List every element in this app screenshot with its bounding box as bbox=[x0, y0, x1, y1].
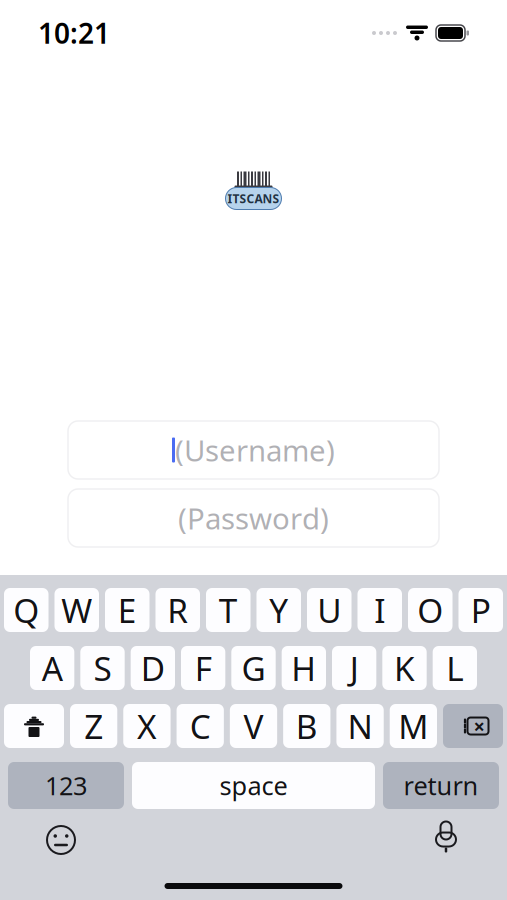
staticText: L bbox=[446, 646, 463, 690]
button[interactable]: R bbox=[155, 588, 200, 632]
button[interactable]: V bbox=[230, 704, 277, 748]
button[interactable]: L bbox=[433, 646, 477, 690]
staticText: 10:21 bbox=[38, 14, 110, 52]
button[interactable]: X bbox=[123, 704, 171, 748]
button[interactable]: M bbox=[390, 704, 437, 748]
button[interactable]: I bbox=[357, 588, 402, 632]
staticText: U bbox=[317, 588, 341, 632]
staticText: G bbox=[241, 646, 265, 690]
button[interactable]: (Username) bbox=[68, 421, 439, 479]
button[interactable]: P bbox=[458, 588, 503, 632]
staticText: (Username) bbox=[175, 430, 335, 469]
staticText: return bbox=[403, 769, 478, 802]
staticText: × bbox=[473, 713, 484, 739]
staticText: W bbox=[61, 588, 92, 632]
button[interactable]: 123 bbox=[8, 762, 124, 809]
button[interactable]: Emoji keyboard bbox=[38, 817, 84, 863]
button[interactable]: Delete bbox=[443, 704, 503, 748]
staticText: P bbox=[471, 588, 491, 632]
staticText: ITSCANS bbox=[227, 190, 279, 206]
staticText: N bbox=[348, 704, 373, 748]
button[interactable]: A bbox=[30, 646, 74, 690]
button[interactable]: space bbox=[132, 762, 375, 809]
staticText: K bbox=[394, 646, 415, 690]
button[interactable]: D bbox=[131, 646, 175, 690]
staticText: H bbox=[291, 646, 316, 690]
button[interactable]: H bbox=[282, 646, 326, 690]
button[interactable]: J bbox=[332, 646, 376, 690]
button[interactable]: Shift bbox=[4, 704, 64, 748]
button[interactable]: (Password) bbox=[68, 489, 439, 547]
staticText: Z bbox=[84, 704, 103, 748]
button[interactable]: U bbox=[307, 588, 351, 632]
staticText: Y bbox=[269, 588, 288, 632]
staticText: S bbox=[93, 646, 111, 690]
staticText: J bbox=[350, 646, 359, 690]
staticText: B bbox=[296, 704, 318, 748]
button[interactable]: K bbox=[382, 646, 427, 690]
button[interactable]: Dictation bbox=[423, 817, 469, 863]
button[interactable]: W bbox=[54, 588, 99, 632]
staticText: V bbox=[243, 704, 263, 748]
button[interactable]: N bbox=[336, 704, 384, 748]
button[interactable]: G bbox=[231, 646, 276, 690]
button[interactable]: B bbox=[283, 704, 330, 748]
button[interactable]: return bbox=[383, 762, 499, 809]
button[interactable]: Q bbox=[4, 588, 48, 632]
staticText: O bbox=[417, 588, 443, 632]
staticText: R bbox=[167, 588, 188, 632]
staticText: 123 bbox=[45, 769, 87, 802]
button[interactable]: Z bbox=[70, 704, 117, 748]
button[interactable]: C bbox=[177, 704, 224, 748]
staticText: Q bbox=[13, 588, 39, 632]
button[interactable]: Y bbox=[256, 588, 301, 632]
button[interactable]: O bbox=[408, 588, 452, 632]
button[interactable]: S bbox=[80, 646, 125, 690]
staticText: D bbox=[141, 646, 165, 690]
staticText: T bbox=[219, 588, 238, 632]
staticText: space bbox=[219, 769, 287, 802]
staticText: X bbox=[137, 704, 157, 748]
staticText: E bbox=[118, 588, 137, 632]
staticText: M bbox=[398, 704, 428, 748]
staticText: A bbox=[42, 646, 63, 690]
button[interactable]: T bbox=[206, 588, 250, 632]
button[interactable]: F bbox=[181, 646, 225, 690]
staticText: (Password) bbox=[178, 498, 329, 537]
staticText: F bbox=[195, 646, 212, 690]
button[interactable]: E bbox=[105, 588, 149, 632]
staticText: C bbox=[190, 704, 211, 748]
staticText: I bbox=[374, 588, 385, 632]
